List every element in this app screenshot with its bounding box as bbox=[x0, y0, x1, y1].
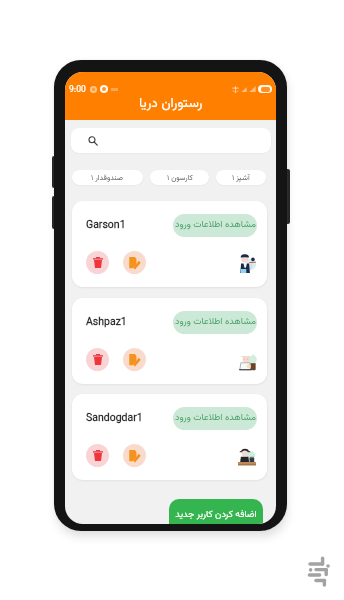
staticText: اضافه کردن کاربر جدید bbox=[175, 507, 257, 522]
staticText: آشپز ۱ bbox=[232, 172, 250, 184]
button[interactable]: Search bbox=[71, 128, 271, 153]
staticText: رستوران دریا bbox=[139, 93, 203, 114]
button[interactable]: آشپز ۱ bbox=[216, 170, 266, 185]
staticText: Ashpaz1 bbox=[86, 314, 127, 330]
staticText: مشاهده اطلاعات ورود bbox=[175, 410, 256, 425]
staticText: کارسون ۱ bbox=[167, 172, 193, 184]
staticText: مشاهده اطلاعات ورود bbox=[175, 314, 256, 329]
button[interactable]: Ashpaz1 bbox=[72, 298, 267, 384]
button[interactable]: Edit bbox=[123, 444, 146, 467]
button[interactable]: Delete bbox=[86, 348, 109, 371]
staticText: Garson1 bbox=[86, 217, 126, 233]
button[interactable]: Delete bbox=[86, 251, 109, 274]
button[interactable]: مشاهده اطلاعات ورود bbox=[173, 214, 257, 237]
button[interactable]: Sandogdar1 bbox=[72, 394, 267, 480]
staticText: مشاهده اطلاعات ورود bbox=[175, 217, 256, 232]
staticText: Sandogdar1 bbox=[86, 410, 143, 426]
button[interactable]: صندوقدار ۱ bbox=[72, 170, 143, 185]
button[interactable]: اضافه کردن کاربر جدید bbox=[169, 499, 263, 524]
staticText: صندوقدار ۱ bbox=[91, 172, 124, 184]
button[interactable]: Edit bbox=[123, 348, 146, 371]
button[interactable]: Delete bbox=[86, 444, 109, 467]
staticText: 9:00 bbox=[69, 83, 86, 96]
button[interactable]: مشاهده اطلاعات ورود bbox=[173, 311, 257, 334]
button[interactable]: Edit bbox=[123, 251, 146, 274]
button[interactable]: مشاهده اطلاعات ورود bbox=[173, 407, 257, 430]
button[interactable]: Garson1 bbox=[72, 201, 267, 287]
button[interactable]: کارسون ۱ bbox=[150, 170, 209, 185]
